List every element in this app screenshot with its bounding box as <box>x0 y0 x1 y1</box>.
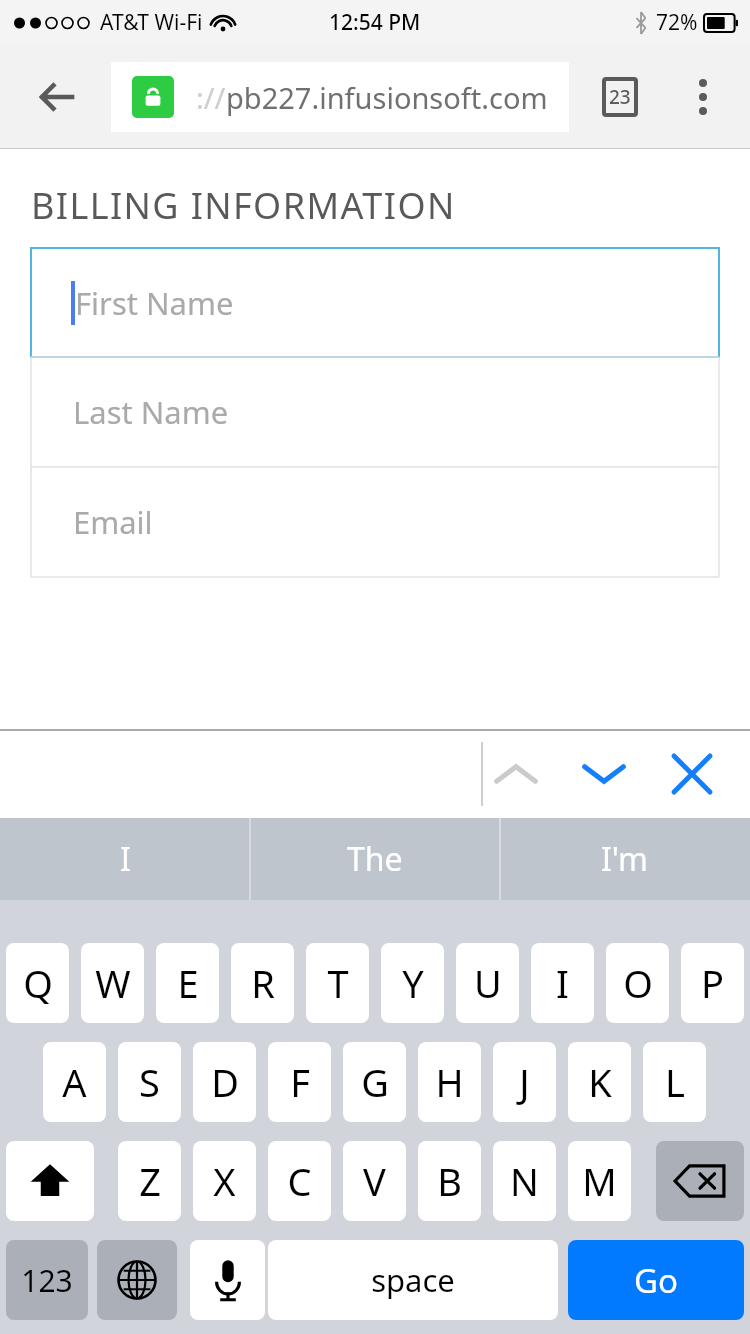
staticText: C <box>287 1155 312 1207</box>
button[interactable]: U <box>456 943 519 1023</box>
staticText: The <box>347 837 403 881</box>
button[interactable]: Z <box>118 1141 181 1221</box>
staticText: Last Name <box>73 391 229 433</box>
staticText: T <box>327 957 349 1009</box>
button[interactable]: Y <box>381 943 444 1023</box>
staticText: 12:54 PM <box>329 8 421 37</box>
button[interactable]: Backspace <box>656 1141 744 1221</box>
staticText: I <box>556 957 569 1009</box>
button[interactable]: Close keyboard <box>648 730 736 818</box>
staticText: 123 <box>21 1260 73 1301</box>
button[interactable]: Q <box>6 943 69 1023</box>
button[interactable]: More options <box>674 68 732 126</box>
staticText: O <box>623 957 653 1009</box>
button[interactable]: Tabs, 23 open <box>590 67 650 127</box>
staticText: :// <box>196 78 226 117</box>
button[interactable]: space <box>268 1240 558 1320</box>
staticText: AT&T Wi-Fi <box>100 8 203 37</box>
staticText: N <box>510 1155 539 1207</box>
staticText: I <box>120 837 131 881</box>
staticText: K <box>588 1056 612 1108</box>
staticText: I'm <box>601 837 649 881</box>
button[interactable]: P <box>681 943 744 1023</box>
staticText: G <box>361 1056 389 1108</box>
staticText: 23 <box>609 84 631 110</box>
button[interactable]: Next field <box>560 730 648 818</box>
staticText: First Name <box>75 282 234 324</box>
button[interactable]: Back <box>22 62 92 132</box>
button[interactable]: I <box>531 943 594 1023</box>
button[interactable]: L <box>643 1042 706 1122</box>
staticText: R <box>251 957 275 1009</box>
staticText: 72% <box>656 8 698 37</box>
button[interactable]: E <box>156 943 219 1023</box>
button[interactable]: :// <box>111 62 569 132</box>
staticText: BILLING INFORMATION <box>31 181 456 230</box>
button[interactable]: 123 <box>6 1240 88 1320</box>
button[interactable]: G <box>343 1042 406 1122</box>
button[interactable]: S <box>118 1042 181 1122</box>
staticText: D <box>211 1056 239 1108</box>
staticText: Email <box>73 501 153 543</box>
staticText: V <box>363 1155 386 1207</box>
button[interactable]: K <box>568 1042 631 1122</box>
button[interactable]: X <box>193 1141 256 1221</box>
staticText: H <box>435 1056 464 1108</box>
staticText: E <box>177 957 199 1009</box>
button[interactable]: N <box>493 1141 556 1221</box>
button[interactable]: I'm <box>500 818 750 900</box>
button[interactable]: Change keyboard <box>97 1240 177 1320</box>
staticText: S <box>139 1056 160 1108</box>
staticText: P <box>701 957 724 1009</box>
staticText: L <box>665 1056 685 1108</box>
staticText: U <box>474 957 502 1009</box>
button[interactable]: Previous field <box>472 730 560 818</box>
button[interactable]: C <box>268 1141 331 1221</box>
staticText: A <box>62 1056 87 1108</box>
button[interactable]: Shift <box>6 1141 94 1221</box>
button[interactable]: B <box>418 1141 481 1221</box>
staticText: X <box>213 1155 236 1207</box>
button[interactable]: First Name <box>31 248 719 357</box>
staticText: pb227.infusionsoft.com <box>226 78 548 117</box>
staticText: Y <box>402 957 424 1009</box>
button[interactable]: J <box>493 1042 556 1122</box>
staticText: Z <box>139 1155 161 1207</box>
button[interactable]: The <box>250 818 500 900</box>
staticText: space <box>371 1259 455 1301</box>
button[interactable]: F <box>268 1042 331 1122</box>
button[interactable]: Dictation <box>190 1240 265 1320</box>
button[interactable]: Last Name <box>31 357 719 467</box>
button[interactable]: D <box>193 1042 256 1122</box>
button[interactable]: Go <box>568 1240 744 1320</box>
button[interactable]: W <box>81 943 144 1023</box>
button[interactable]: Email <box>31 467 719 577</box>
staticText: J <box>519 1056 530 1108</box>
button[interactable]: T <box>306 943 369 1023</box>
button[interactable]: O <box>606 943 669 1023</box>
button[interactable]: M <box>568 1141 631 1221</box>
button[interactable]: A <box>43 1042 106 1122</box>
button[interactable]: H <box>418 1042 481 1122</box>
button[interactable]: R <box>231 943 294 1023</box>
staticText: F <box>290 1056 310 1108</box>
staticText: W <box>95 957 131 1009</box>
staticText: Q <box>23 957 53 1009</box>
staticText: M <box>582 1155 617 1207</box>
staticText: Go <box>634 1258 678 1303</box>
staticText: B <box>437 1155 462 1207</box>
button[interactable]: V <box>343 1141 406 1221</box>
button[interactable]: I <box>0 818 250 900</box>
